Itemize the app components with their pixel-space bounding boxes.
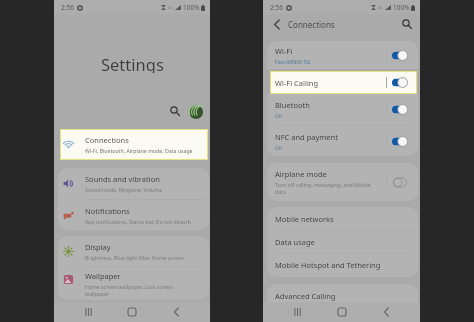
staticText: 4G bbox=[378, 5, 383, 10]
staticText: Home screen wallpaper, Lock screen wallp… bbox=[85, 283, 173, 297]
staticText: Wi-Fi, Bluetooth, Airplane mode, Data us… bbox=[85, 147, 193, 154]
button[interactable]: Mobile networks bbox=[267, 207, 418, 230]
staticText: Display bbox=[85, 242, 111, 252]
button[interactable]: Connections bbox=[61, 130, 207, 159]
button[interactable]: Back bbox=[378, 304, 394, 320]
button[interactable]: Wi-Fi Calling bbox=[271, 72, 416, 93]
staticText: 2:56 bbox=[61, 3, 74, 12]
staticText: Fios-09NVE-5G bbox=[275, 58, 311, 65]
button[interactable]: Back bbox=[269, 17, 284, 32]
button[interactable]: Wallpaper bbox=[58, 267, 209, 299]
button[interactable]: NFC and payment bbox=[267, 126, 418, 156]
staticText: On bbox=[275, 112, 283, 119]
button[interactable]: Search bbox=[399, 16, 415, 32]
button[interactable]: Back bbox=[168, 304, 184, 320]
staticText: Bluetooth bbox=[275, 100, 310, 110]
staticText: Airplane mode bbox=[275, 169, 327, 179]
button[interactable]: Connections bbox=[61, 130, 207, 159]
staticText: Sounds and vibration bbox=[85, 174, 160, 184]
staticText: Wallpaper bbox=[85, 271, 121, 281]
staticText: Sound mode, Ringtone, Volume bbox=[85, 186, 163, 193]
staticText: Wi-Fi Calling bbox=[275, 78, 319, 88]
staticText: 100% bbox=[393, 3, 410, 12]
button[interactable]: Recents bbox=[289, 304, 305, 320]
staticText: 2:56 bbox=[270, 3, 283, 12]
staticText: 100% bbox=[183, 3, 200, 12]
button[interactable]: Data usage bbox=[267, 231, 418, 253]
staticText: Data usage bbox=[275, 237, 315, 247]
staticText: Mobile Hotspot and Tethering bbox=[275, 260, 381, 270]
button[interactable]: Account bbox=[189, 105, 203, 119]
button[interactable]: Home bbox=[124, 304, 140, 320]
button[interactable]: Home bbox=[334, 304, 350, 320]
button[interactable]: Notifications bbox=[58, 200, 209, 230]
staticText: Notifications bbox=[85, 206, 130, 216]
staticText: Mobile networks bbox=[275, 214, 334, 224]
staticText: On bbox=[275, 144, 283, 151]
staticText: Connections bbox=[288, 19, 335, 30]
staticText: Wi-Fi bbox=[275, 46, 293, 56]
staticText: Connections bbox=[85, 135, 129, 145]
button[interactable]: Airplane mode bbox=[267, 163, 418, 201]
button[interactable]: Bluetooth bbox=[267, 94, 418, 125]
staticText: Settings bbox=[101, 53, 164, 73]
button[interactable]: Recents bbox=[80, 304, 96, 320]
button[interactable]: Mobile Hotspot and Tethering bbox=[267, 254, 418, 276]
button[interactable]: Advanced Calling bbox=[267, 284, 418, 307]
staticText: NFC and payment bbox=[275, 132, 338, 142]
button[interactable]: Search bbox=[167, 103, 183, 119]
button[interactable]: Wi-Fi Calling bbox=[271, 72, 416, 93]
button[interactable]: Sounds and vibration bbox=[58, 168, 209, 199]
staticText: Turn off calling, messaging, and Mobile … bbox=[275, 181, 371, 195]
staticText: App notifications, Status bar, Do not di… bbox=[85, 218, 191, 225]
button[interactable]: Wi-Fi bbox=[267, 41, 418, 69]
button[interactable]: Display bbox=[58, 236, 209, 266]
staticText: Brightness, Blue light filter, Home scre… bbox=[85, 254, 184, 261]
staticText: Advanced Calling bbox=[275, 291, 336, 301]
staticText: 4G bbox=[168, 5, 173, 10]
